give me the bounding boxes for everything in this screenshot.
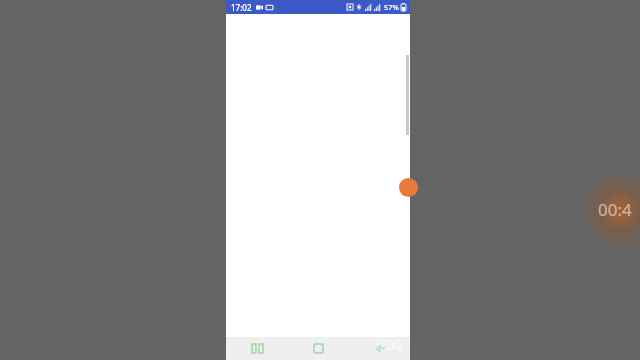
staticText: 17:02 xyxy=(231,2,252,13)
button[interactable]: Back xyxy=(349,337,410,360)
staticText: 00:4 xyxy=(598,198,632,221)
staticText: 57% xyxy=(384,2,399,12)
button[interactable]: Recording badge xyxy=(399,178,418,197)
button[interactable]: Recents xyxy=(226,337,288,360)
button[interactable]: Home xyxy=(288,337,349,360)
